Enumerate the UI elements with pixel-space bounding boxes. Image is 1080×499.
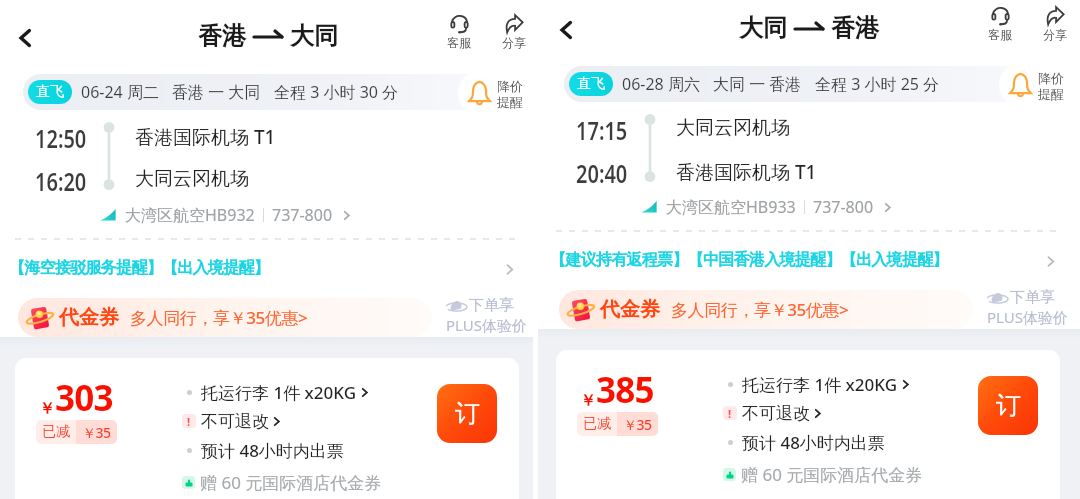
button[interactable]: 大湾区航空HB932 [100, 204, 352, 226]
staticText: 大同云冈机场 [135, 167, 249, 191]
staticText: 香港 一 大同 [172, 81, 261, 103]
staticText: 全程 3 小时 30 分 [274, 81, 399, 103]
staticText: 直飞 [577, 75, 605, 93]
button[interactable] [564, 66, 1080, 102]
staticText: 客服 [447, 35, 471, 50]
button[interactable] [0, 253, 533, 285]
staticText: 托运行李 1件 x20KG [742, 373, 898, 396]
button[interactable]: 托运行李 1件 x20KG [182, 380, 370, 404]
staticText: 大湾区航空HB932 [125, 204, 255, 226]
staticText: 全程 3 小时 25 分 [815, 73, 940, 95]
button[interactable]: 托运行李 1件 x20KG [723, 372, 911, 396]
staticText: 不可退改 [201, 411, 269, 432]
staticText: 香港 [831, 13, 879, 43]
staticText: 分享 [1043, 27, 1067, 42]
staticText: 直飞 [36, 83, 64, 101]
staticText: 大同 [739, 13, 787, 43]
staticText: 多人同行，享￥35优惠> [671, 298, 849, 321]
button[interactable]: 分享 [1036, 6, 1074, 42]
button[interactable]: 预计 48小时内出票 [723, 430, 885, 454]
button[interactable] [18, 298, 432, 337]
button[interactable]: 分享 [495, 14, 533, 50]
staticText: ! [728, 406, 732, 420]
button[interactable]: 客服 [981, 6, 1019, 42]
staticText: 香港国际机场 T1 [676, 159, 817, 185]
staticText: 大同 一 香港 [713, 73, 802, 95]
staticText: ￥35 [82, 423, 111, 442]
staticText: 303 [55, 374, 113, 422]
staticText: ! [187, 414, 191, 428]
staticText: 下单享 [1010, 288, 1055, 307]
staticText: 多人同行，享￥35优惠> [130, 306, 308, 329]
button[interactable] [559, 290, 973, 329]
staticText: ￥ [580, 391, 596, 411]
staticText: PLUS体验价 [987, 307, 1068, 327]
staticText: 下单享 [469, 296, 514, 315]
staticText: 提醒 [1038, 86, 1064, 102]
staticText: 大同 [290, 21, 338, 51]
staticText: 385 [596, 366, 654, 414]
button[interactable]: 大湾区航空HB933 [641, 196, 893, 218]
staticText: 06-24 周二 [81, 81, 159, 103]
staticText: 737-800 [272, 204, 333, 226]
button[interactable]: 赠 60 元国际酒店代金券 [182, 470, 382, 494]
button[interactable] [538, 245, 1080, 277]
button[interactable]: 订 [978, 376, 1038, 435]
staticText: 【建议持有返程票】【中国香港入境提醒】【出入境提醒】 [550, 250, 948, 270]
button[interactable]: 客服 [440, 14, 478, 50]
staticText: 已减 [42, 423, 70, 441]
staticText: 代金券 [59, 305, 119, 330]
staticText: 大同云冈机场 [676, 116, 790, 140]
button[interactable]: Back [548, 12, 584, 48]
staticText: 客服 [988, 27, 1012, 42]
staticText: 06-28 周六 [622, 73, 700, 95]
staticText: 托运行李 1件 x20KG [201, 381, 357, 404]
button[interactable]: 订 [437, 384, 497, 443]
staticText: 分享 [502, 35, 526, 50]
staticText: 已减 [583, 415, 611, 433]
button[interactable] [458, 71, 536, 116]
staticText: 降价 [1038, 70, 1064, 86]
staticText: 订 [455, 398, 480, 429]
staticText: 代金券 [600, 297, 660, 322]
staticText: 17:15 [576, 113, 628, 147]
staticText: 预计 48小时内出票 [742, 431, 885, 454]
staticText: 赠 60 元国际酒店代金券 [741, 463, 923, 486]
button[interactable] [23, 74, 536, 110]
staticText: 提醒 [497, 94, 523, 110]
staticText: ￥ [39, 399, 55, 419]
button[interactable]: ! [182, 409, 282, 433]
staticText: PLUS体验价 [446, 315, 527, 335]
button[interactable] [999, 63, 1080, 108]
button[interactable]: 赠 60 元国际酒店代金券 [723, 462, 923, 486]
button[interactable]: Back [7, 20, 43, 56]
staticText: ￥35 [623, 415, 652, 434]
staticText: 20:40 [576, 156, 628, 190]
staticText: 16:20 [35, 164, 87, 198]
staticText: 大湾区航空HB933 [666, 196, 796, 218]
button[interactable]: 预计 48小时内出票 [182, 438, 344, 462]
staticText: 不可退改 [742, 403, 810, 424]
staticText: 赠 60 元国际酒店代金券 [200, 471, 382, 494]
staticText: 香港国际机场 T1 [135, 124, 276, 150]
staticText: 737-800 [813, 196, 874, 218]
staticText: 预计 48小时内出票 [201, 439, 344, 462]
staticText: 订 [996, 390, 1021, 421]
staticText: 【海空接驳服务提醒】【出入境提醒】 [9, 258, 270, 278]
button[interactable]: ! [723, 401, 823, 425]
staticText: 降价 [497, 78, 523, 94]
staticText: 12:50 [35, 121, 87, 155]
staticText: 香港 [198, 21, 246, 51]
